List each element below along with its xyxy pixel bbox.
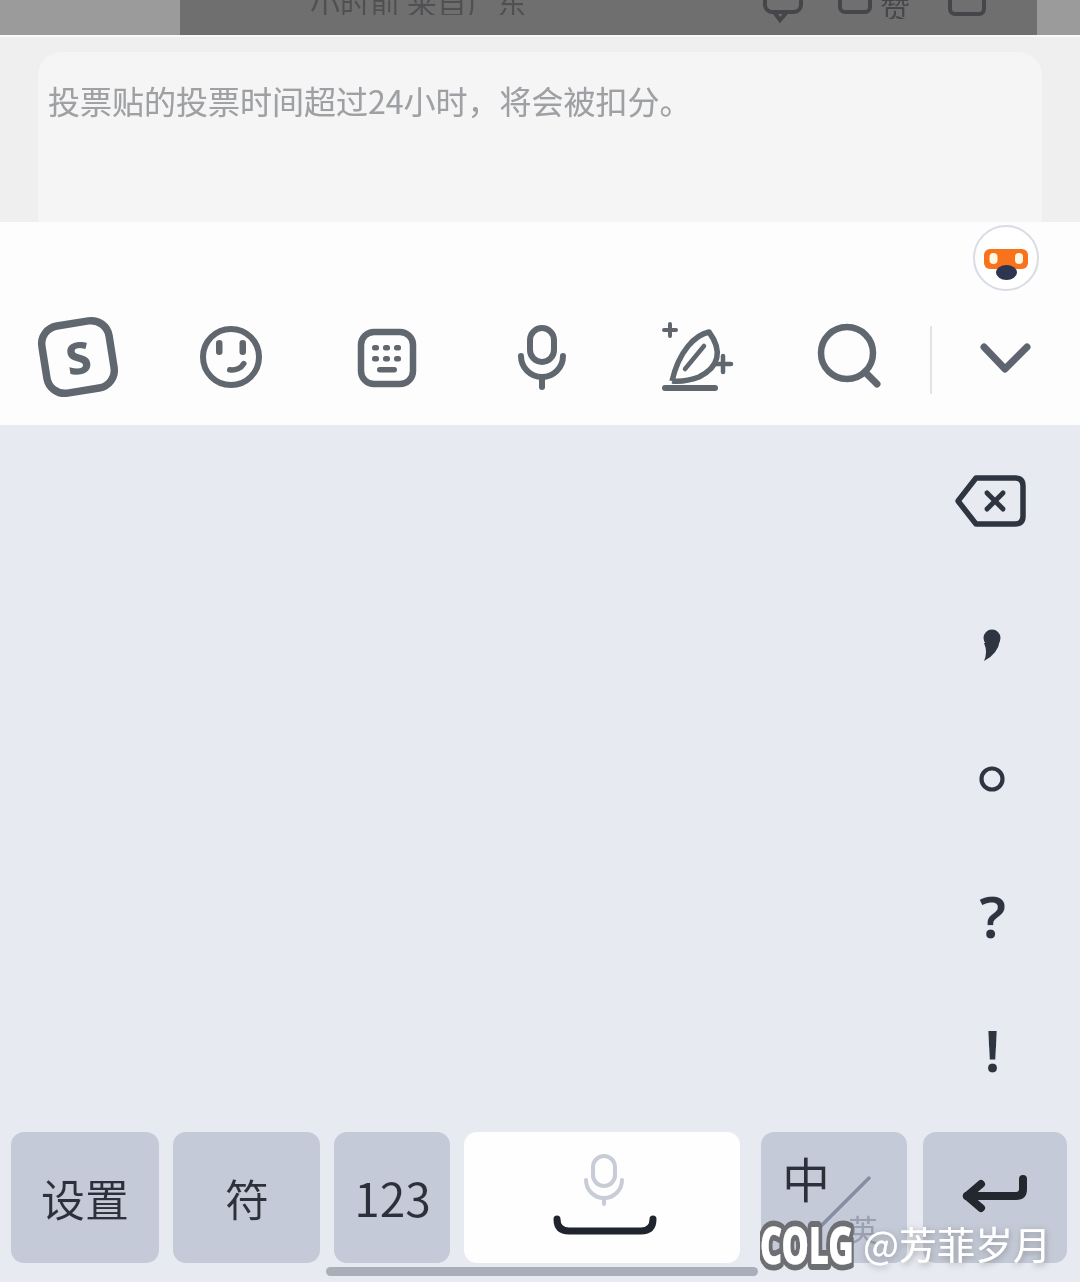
staticText: 设置 xyxy=(41,1166,129,1230)
staticText: 投票贴的投票时间超过24小时，将会被扣分。 xyxy=(48,77,692,123)
button[interactable]: 符 xyxy=(173,1132,320,1263)
staticText: 中 xyxy=(782,1142,831,1212)
staticText: 小时前 来自广东 xyxy=(310,0,527,15)
staticText: ? xyxy=(979,876,1006,955)
button[interactable] xyxy=(358,329,416,387)
staticText: ! xyxy=(984,1010,1001,1089)
button[interactable]: 设置 xyxy=(11,1132,159,1263)
staticText: 符 xyxy=(225,1166,269,1230)
button[interactable] xyxy=(940,465,1040,540)
button[interactable] xyxy=(660,324,734,394)
staticText: 123 xyxy=(354,1164,431,1231)
button[interactable]: 中 xyxy=(761,1132,907,1263)
button[interactable] xyxy=(937,590,1047,700)
button[interactable]: ? xyxy=(937,860,1047,970)
staticText: 赞 xyxy=(880,0,910,19)
button[interactable] xyxy=(38,52,1042,222)
staticText: COLG xyxy=(760,1208,854,1272)
staticText: @芳菲岁月 xyxy=(863,1215,1051,1270)
button[interactable] xyxy=(937,724,1047,834)
button[interactable] xyxy=(973,225,1039,291)
button[interactable] xyxy=(972,332,1038,382)
button[interactable] xyxy=(512,322,572,394)
button[interactable]: 123 xyxy=(334,1132,450,1263)
button[interactable] xyxy=(815,322,885,392)
button[interactable] xyxy=(923,1132,1067,1263)
staticText: COLG xyxy=(760,1208,854,1272)
staticText: S xyxy=(61,325,96,388)
button[interactable]: S xyxy=(38,317,118,397)
staticText: 英 xyxy=(848,1206,878,1249)
button[interactable] xyxy=(464,1132,740,1263)
button[interactable] xyxy=(196,322,266,392)
button[interactable]: ! xyxy=(937,994,1047,1104)
